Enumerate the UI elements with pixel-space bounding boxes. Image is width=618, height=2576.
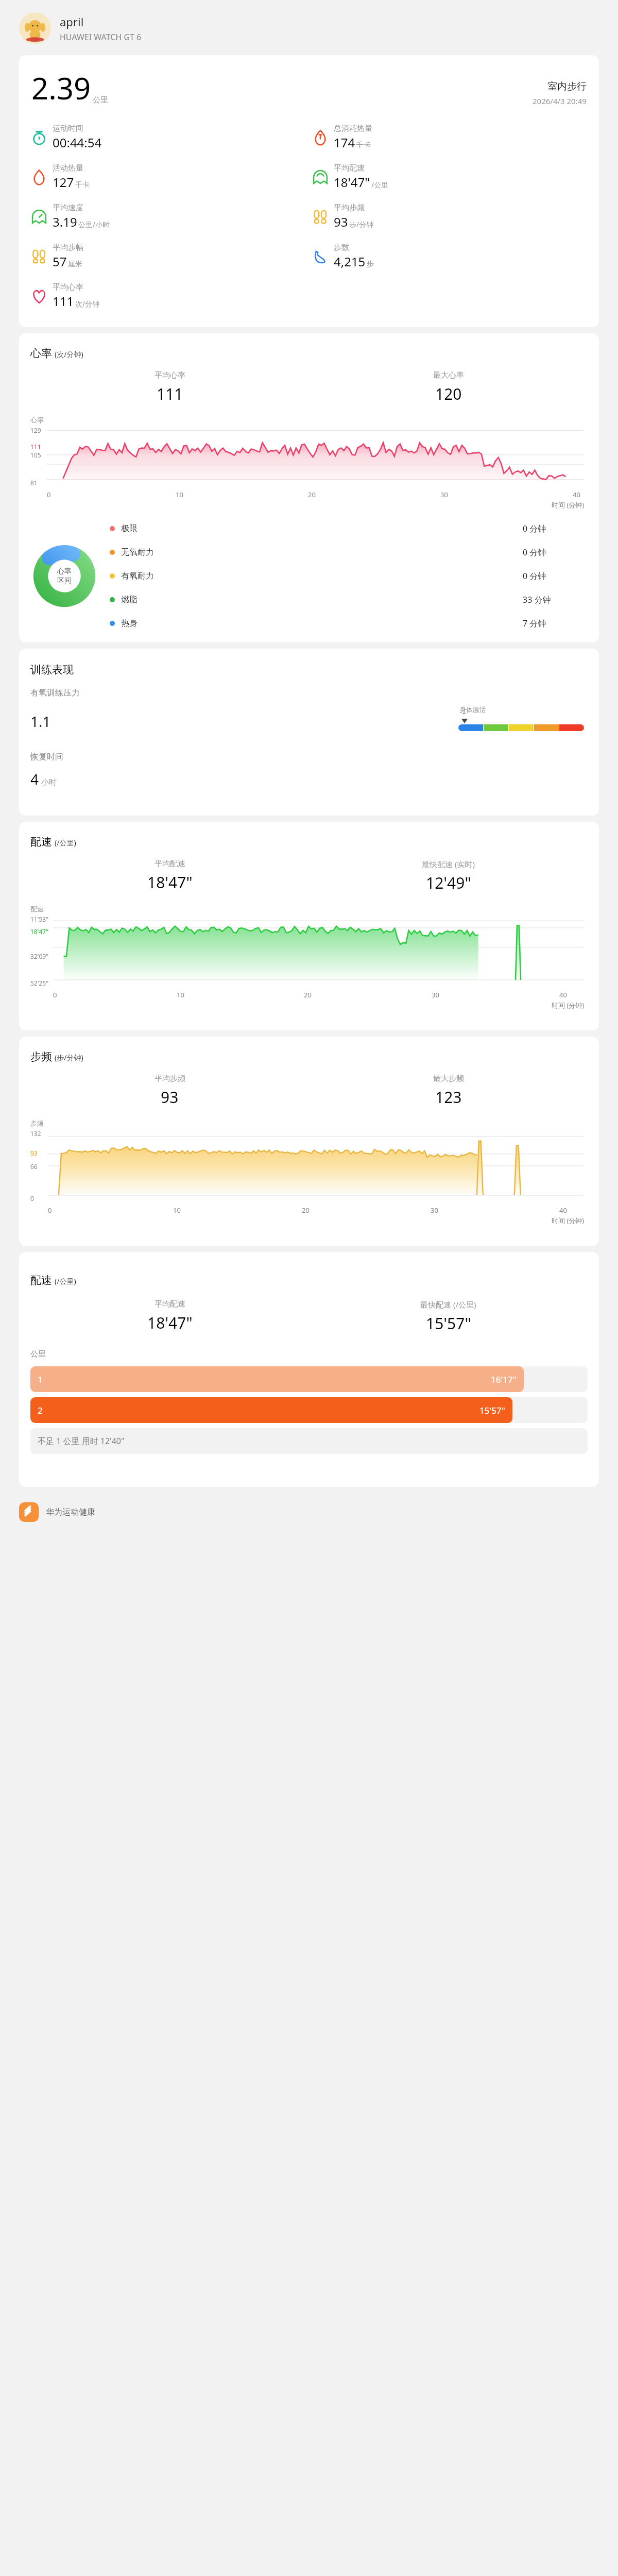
- staticText: 40: [559, 1206, 567, 1215]
- button[interactable]: 燃脂: [110, 594, 585, 605]
- staticText: 配速: [30, 905, 44, 913]
- staticText: 平均配速: [154, 859, 185, 869]
- staticText: 18'47": [334, 174, 370, 191]
- staticText: 平均步频: [334, 203, 365, 213]
- staticText: 0: [48, 1206, 52, 1215]
- staticText: 燃脂: [121, 595, 138, 605]
- staticText: 00:44:54: [53, 134, 102, 151]
- staticText: 93: [161, 1087, 179, 1108]
- button[interactable]: 平均速度: [30, 203, 110, 230]
- staticText: 0 分钟: [523, 523, 546, 534]
- staticText: 心率: [57, 567, 72, 576]
- staticText: 公里/小时: [78, 219, 110, 229]
- staticText: 4,215: [334, 253, 366, 270]
- staticText: 室内步行: [547, 80, 587, 93]
- staticText: 平均配速: [154, 1299, 185, 1309]
- staticText: 总消耗热量: [334, 124, 372, 133]
- button[interactable]: 不足 1 公里 用时 12'40": [30, 1428, 588, 1454]
- button[interactable]: 总消耗热量: [312, 124, 372, 151]
- staticText: 时间 (分钟): [552, 1216, 585, 1225]
- staticText: 热身: [121, 618, 138, 629]
- staticText: 11'53": [30, 915, 49, 923]
- staticText: 最快配速 (/公里): [420, 1299, 476, 1310]
- staticText: 极限: [121, 523, 138, 534]
- staticText: 18'47": [147, 1312, 193, 1333]
- staticText: 无氧耐力: [121, 547, 154, 557]
- staticText: 15'57": [479, 1404, 505, 1416]
- staticText: 30: [431, 1206, 438, 1215]
- staticText: 2026/4/3 20:49: [533, 96, 587, 106]
- button[interactable]: 热身: [110, 618, 585, 629]
- staticText: (步/分钟): [55, 1053, 83, 1062]
- button[interactable]: 1: [30, 1366, 588, 1392]
- staticText: 恢复时间: [30, 752, 63, 762]
- staticText: 1: [38, 1374, 43, 1385]
- staticText: 千卡: [356, 141, 371, 150]
- button[interactable]: 活动热量: [30, 163, 90, 191]
- staticText: 0 分钟: [523, 547, 546, 558]
- staticText: 区间: [57, 576, 72, 585]
- button[interactable]: 平均步频: [312, 203, 374, 230]
- staticText: 最大心率: [433, 370, 464, 380]
- staticText: 活动热量: [53, 163, 83, 173]
- button[interactable]: 运动时间: [30, 124, 102, 151]
- staticText: 111: [157, 383, 183, 404]
- staticText: 厘米: [68, 260, 82, 269]
- button[interactable]: 无氧耐力: [110, 547, 585, 558]
- staticText: 最快配速 (实时): [422, 859, 475, 869]
- staticText: 32'09": [30, 952, 49, 960]
- staticText: 20: [304, 990, 312, 999]
- staticText: 心率: [30, 347, 52, 360]
- staticText: 最大步频: [433, 1074, 464, 1083]
- staticText: 111: [53, 293, 74, 310]
- staticText: 7 分钟: [523, 618, 546, 629]
- button[interactable]: 平均心率: [30, 282, 100, 310]
- staticText: 身体激活: [459, 705, 486, 714]
- staticText: /公里: [371, 180, 389, 190]
- staticText: 15'57": [426, 1313, 471, 1334]
- staticText: 10: [173, 1206, 181, 1215]
- staticText: 时间 (分钟): [552, 1001, 585, 1010]
- staticText: HUAWEI WATCH GT 6: [60, 31, 142, 43]
- staticText: 0: [47, 490, 51, 499]
- staticText: 平均心率: [53, 282, 83, 292]
- staticText: 有氧耐力: [121, 571, 154, 581]
- staticText: 30: [440, 490, 448, 499]
- staticText: 33 分钟: [523, 594, 551, 605]
- staticText: 平均配速: [334, 163, 365, 173]
- button[interactable]: 平均配速: [312, 163, 389, 191]
- button[interactable]: 华为运动健康: [19, 1502, 618, 1522]
- staticText: 华为运动健康: [46, 1507, 95, 1517]
- staticText: 18'47": [147, 872, 193, 893]
- staticText: 配速: [30, 1274, 52, 1287]
- staticText: 129: [30, 426, 41, 434]
- button[interactable]: 步数: [312, 243, 374, 270]
- staticText: 40: [573, 490, 580, 499]
- staticText: 配速: [30, 835, 52, 849]
- staticText: 127: [53, 174, 74, 191]
- button[interactable]: 2: [30, 1397, 588, 1423]
- staticText: 平均速度: [53, 203, 83, 213]
- staticText: 运动时间: [53, 124, 83, 133]
- staticText: 123: [435, 1087, 462, 1108]
- staticText: 0: [53, 990, 57, 999]
- button[interactable]: 平均步幅: [30, 243, 83, 270]
- staticText: 时间 (分钟): [552, 500, 585, 510]
- button[interactable]: 有氧耐力: [110, 570, 585, 582]
- staticText: 93: [30, 1149, 38, 1157]
- staticText: 步: [367, 260, 374, 269]
- staticText: 公里: [93, 95, 108, 105]
- staticText: 52'25": [30, 979, 49, 987]
- other: 华为运动健康: [19, 1502, 39, 1522]
- staticText: 16'17": [491, 1374, 517, 1385]
- staticText: 12'49": [426, 872, 471, 893]
- staticText: 81: [30, 479, 38, 487]
- staticText: 步频: [30, 1050, 52, 1063]
- staticText: 步频: [30, 1119, 44, 1127]
- staticText: 小时: [41, 777, 57, 787]
- staticText: 心率: [30, 416, 44, 424]
- staticText: 有氧训练压力: [30, 688, 80, 698]
- staticText: 10: [177, 990, 184, 999]
- button[interactable]: 极限: [110, 523, 585, 534]
- staticText: 132: [30, 1129, 41, 1138]
